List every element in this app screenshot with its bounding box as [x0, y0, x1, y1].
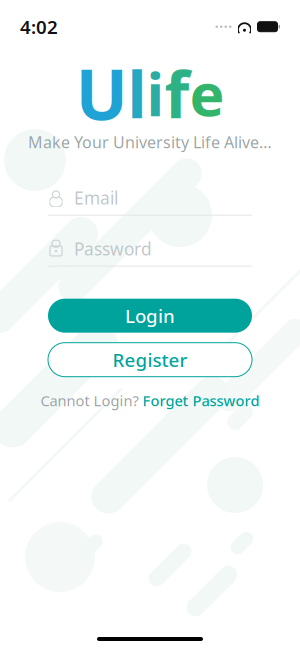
button[interactable]: Register	[48, 343, 252, 377]
staticText: U	[75, 46, 127, 141]
staticText: i	[146, 53, 164, 133]
staticText: Cannot Login?	[40, 391, 138, 410]
staticText: Login	[125, 303, 175, 328]
staticText: Forget Password	[142, 391, 259, 411]
button[interactable]: Login	[48, 299, 252, 333]
staticText: l	[127, 50, 146, 137]
staticText: Make Your University Life Alive…	[28, 131, 272, 153]
staticText: e	[189, 53, 224, 133]
staticText: Email	[74, 186, 118, 209]
staticText: 4:02	[20, 14, 58, 39]
staticText: Register	[112, 347, 187, 372]
staticText: f	[164, 50, 189, 137]
button[interactable]: Forget Password	[142, 391, 259, 411]
staticText: Password	[74, 237, 152, 260]
